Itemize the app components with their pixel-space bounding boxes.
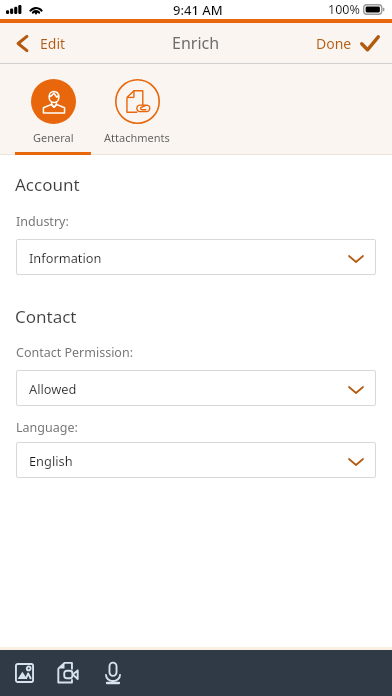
- staticText: Allowed: [29, 380, 77, 397]
- staticText: Contact Permission:: [16, 344, 134, 361]
- button[interactable]: Done: [306, 34, 392, 53]
- staticText: Account: [15, 173, 80, 196]
- staticText: Industry:: [16, 213, 69, 230]
- button[interactable]: Record audio: [91, 650, 135, 696]
- staticText: Language:: [16, 419, 78, 436]
- staticText: General: [33, 130, 74, 145]
- button[interactable]: Allowed: [16, 370, 376, 406]
- staticText: Attachments: [104, 130, 170, 145]
- button[interactable]: English: [16, 442, 376, 478]
- staticText: English: [29, 452, 73, 469]
- button[interactable]: General: [15, 64, 91, 145]
- button[interactable]: Information: [16, 239, 376, 275]
- staticText: Edit: [40, 34, 66, 53]
- staticText: Information: [29, 249, 102, 266]
- button[interactable]: Edit: [0, 34, 76, 53]
- staticText: Done: [316, 34, 352, 53]
- button[interactable]: Attachments: [99, 64, 175, 145]
- button[interactable]: Add photo: [2, 650, 46, 696]
- staticText: 9:41 AM: [173, 1, 223, 19]
- staticText: Contact: [15, 305, 77, 328]
- staticText: 100%: [328, 1, 360, 18]
- button[interactable]: Record video: [46, 650, 90, 696]
- staticText: Enrich: [172, 32, 220, 54]
